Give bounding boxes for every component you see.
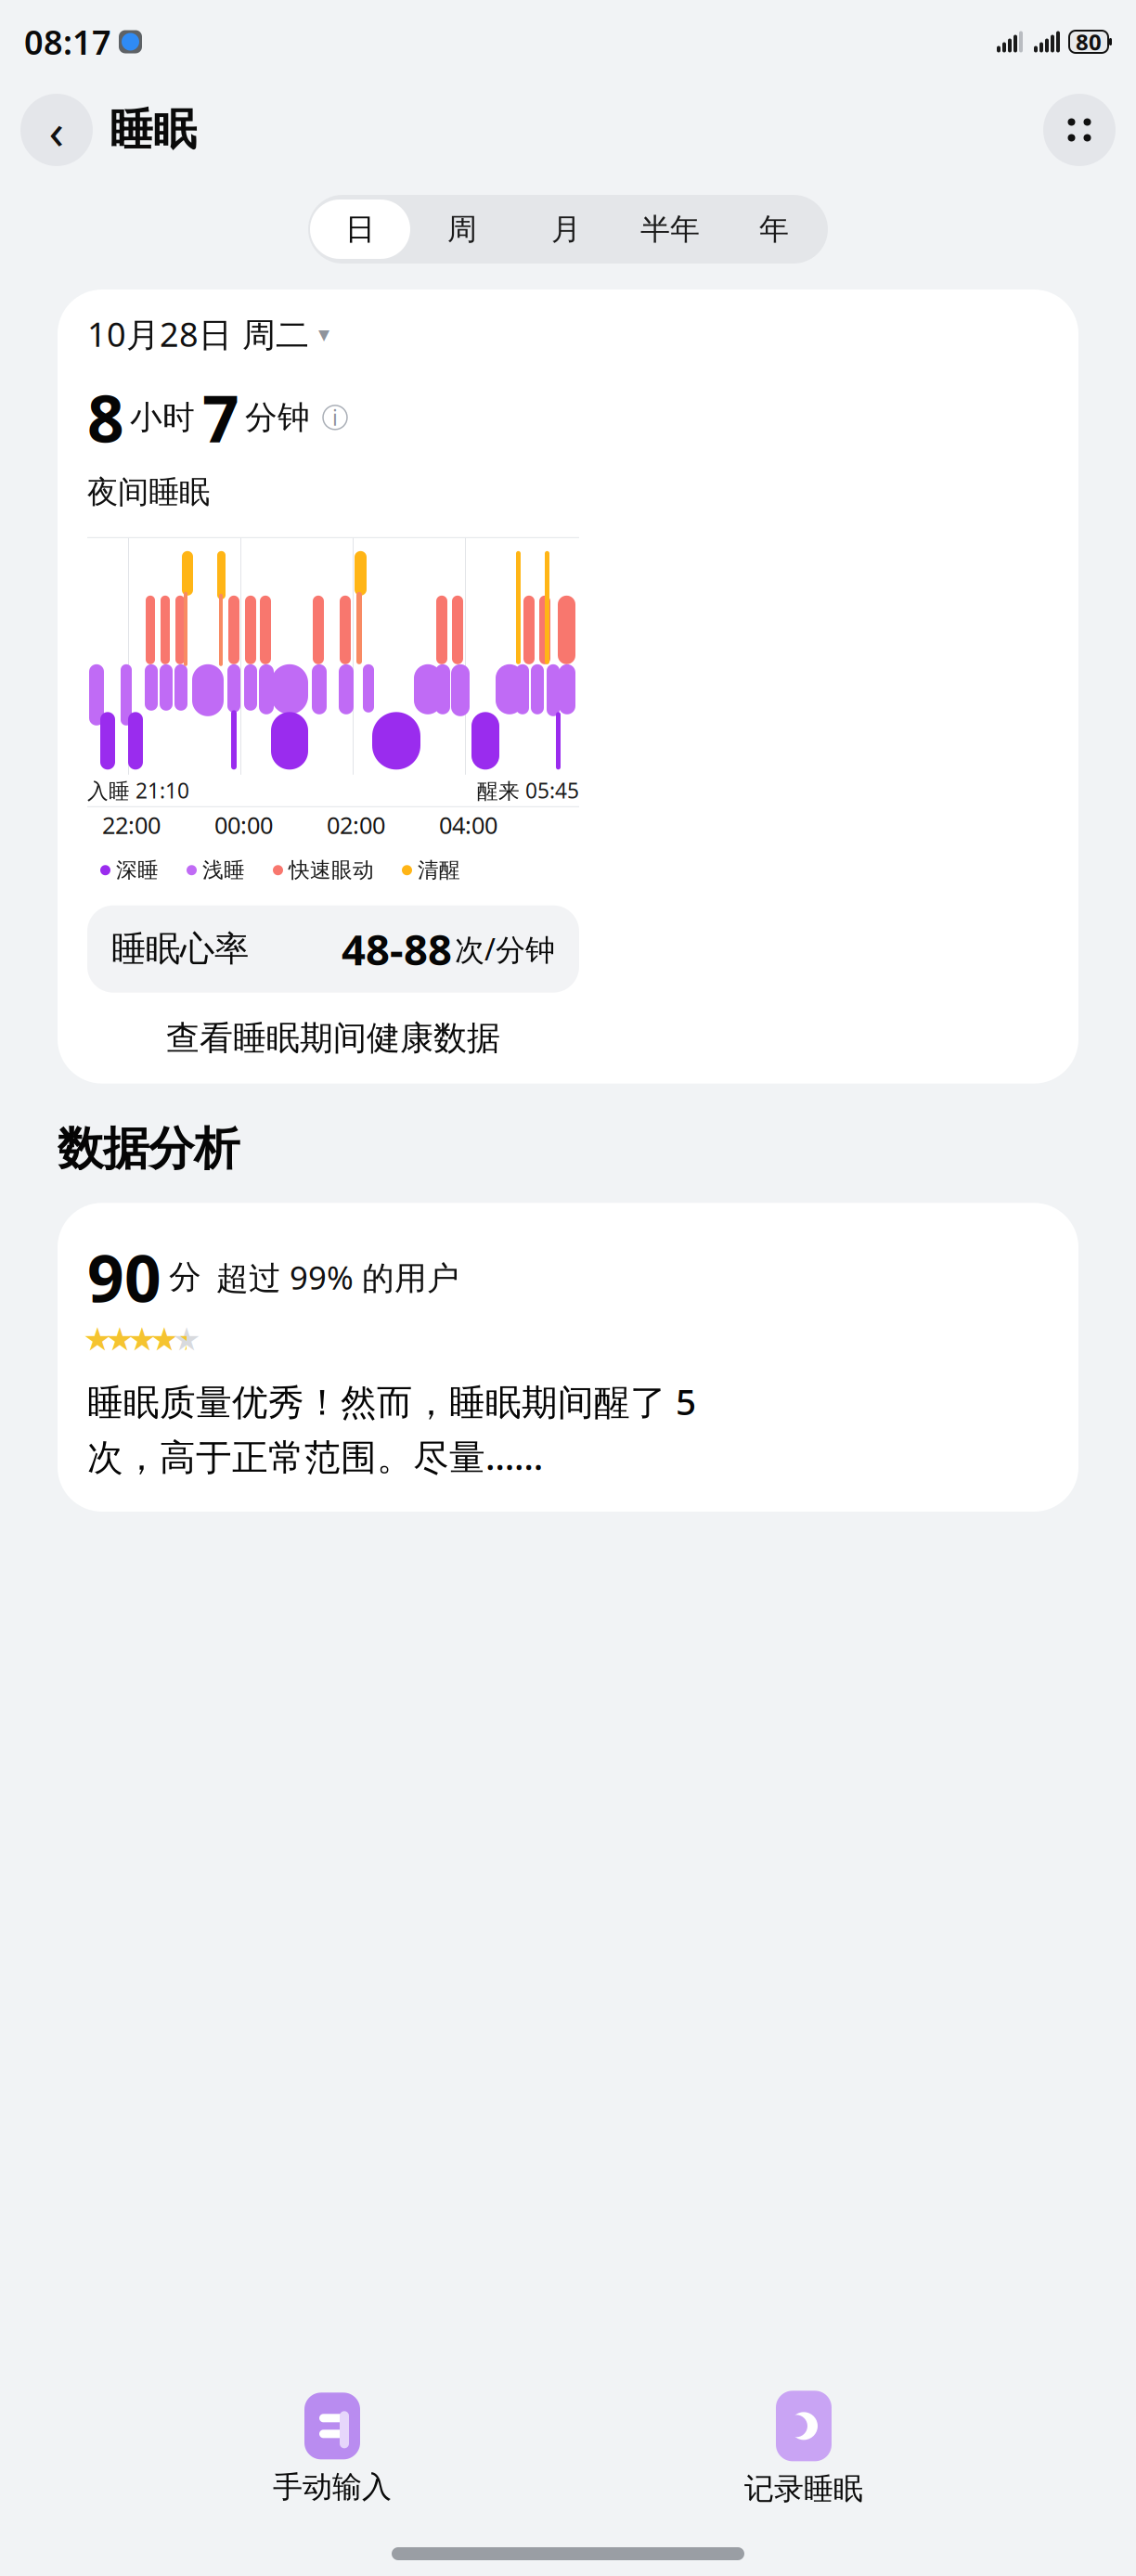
button[interactable]: 月 — [514, 200, 618, 259]
staticText: 7 — [202, 375, 239, 460]
staticText: 次/分钟 — [455, 929, 555, 969]
staticText: ★ — [172, 1321, 201, 1358]
button[interactable]: 年 — [722, 200, 826, 259]
staticText: 02:00 — [327, 809, 385, 840]
staticText: 次，高于正常范围。尽量…… — [87, 1432, 543, 1480]
staticText: 醒来 05:45 — [477, 777, 579, 804]
staticText: 睡眠心率 — [111, 928, 249, 970]
button[interactable]: 更多 — [1043, 94, 1116, 166]
button[interactable]: 查看睡眠期间健康数据 — [87, 1013, 579, 1063]
staticText: ‹ — [49, 97, 65, 163]
staticText: 80 — [1076, 27, 1102, 57]
staticText: 年 — [759, 211, 789, 247]
button[interactable]: 返回 — [20, 94, 93, 166]
staticText: 快速眼动 — [289, 857, 374, 883]
staticText: i — [332, 403, 338, 431]
staticText: 深睡 — [116, 857, 159, 883]
staticText: ★ — [83, 1321, 112, 1358]
staticText: 10月28日 周二 — [87, 312, 309, 356]
staticText: 90 — [87, 1234, 161, 1320]
staticText: 月 — [551, 211, 581, 247]
staticText: 04:00 — [439, 809, 497, 840]
staticText: ★ — [105, 1321, 134, 1358]
staticText: 22:00 — [102, 809, 161, 840]
staticText: 日 — [345, 211, 375, 247]
staticText: 分钟 — [245, 398, 310, 437]
staticText: 查看睡眠期间健康数据 — [166, 1018, 500, 1059]
staticText: 48-88 — [342, 921, 452, 977]
staticText: 小时 — [130, 398, 195, 437]
button[interactable]: 睡眠心率 — [87, 905, 579, 993]
staticText: 半年 — [640, 211, 700, 247]
staticText: 清醒 — [418, 857, 460, 883]
button[interactable]: 10月28日 周二 — [87, 312, 1049, 356]
staticText: 周 — [447, 211, 477, 247]
button[interactable]: 说明 — [323, 405, 347, 429]
staticText: 08:17 — [24, 20, 111, 64]
staticText: 记录睡眠 — [744, 2470, 863, 2507]
staticText: 数据分析 — [58, 1121, 239, 1177]
staticText: 浅睡 — [202, 857, 245, 883]
button[interactable]: 记录睡眠 — [665, 2379, 943, 2518]
button[interactable]: 手动输入 — [193, 2379, 471, 2518]
staticText: ★ — [150, 1321, 179, 1358]
staticText: ▾ — [318, 321, 329, 347]
staticText: ★ — [178, 1321, 207, 1358]
staticText: 睡眠质量优秀！然而，睡眠期间醒了 5 — [87, 1377, 696, 1425]
button[interactable]: 半年 — [618, 200, 722, 259]
button[interactable]: 周 — [410, 200, 514, 259]
staticText: 8 — [87, 375, 124, 460]
staticText: 手动输入 — [273, 2469, 392, 2505]
staticText: 夜间睡眠 — [87, 473, 210, 511]
staticText: 睡眠 — [110, 103, 197, 156]
button[interactable]: 日 — [310, 200, 410, 259]
staticText: 分 — [169, 1257, 201, 1297]
staticText: 超过 99% 的用户 — [216, 1256, 459, 1298]
staticText: 入睡 21:10 — [87, 777, 189, 804]
staticText: 00:00 — [214, 809, 273, 840]
staticText: ★ — [128, 1321, 156, 1358]
